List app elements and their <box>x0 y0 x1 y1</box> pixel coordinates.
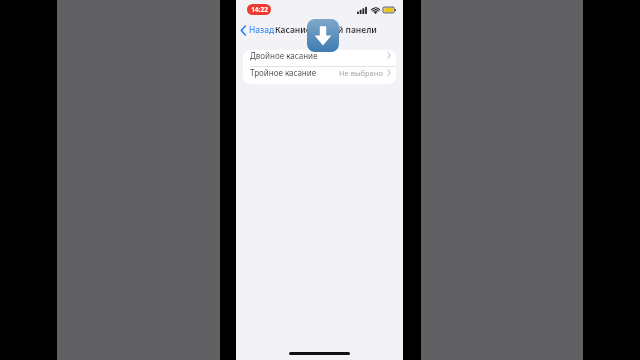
staticText: Касание задней панели <box>275 24 377 36</box>
staticText: Двойное касание <box>250 50 318 61</box>
staticText: Не выбрано <box>339 68 383 78</box>
button[interactable]: Download <box>307 19 339 52</box>
staticText: Назад <box>249 24 275 36</box>
button[interactable]: Назад <box>240 24 275 36</box>
button[interactable]: Тройное касание <box>243 67 396 84</box>
button[interactable]: Двойное касание <box>243 50 396 67</box>
staticText: 14:22 <box>251 5 268 14</box>
staticText: Тройное касание <box>250 67 317 78</box>
